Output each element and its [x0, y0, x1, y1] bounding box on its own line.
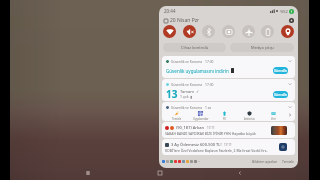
button[interactable]: Pil — [213, 110, 236, 121]
staticText: Veri — [271, 117, 276, 121]
button[interactable]: Back — [234, 167, 246, 179]
staticText: Uygulamalar — [193, 117, 209, 121]
staticText: 20:44 — [164, 8, 176, 14]
staticText: Güvenlik ve Koruma — [171, 82, 203, 86]
button[interactable]: Settings — [289, 18, 294, 23]
staticText: Güncelle — [274, 69, 288, 73]
button[interactable]: App — [166, 160, 169, 163]
staticText: Güvenlik ve Koruma — [171, 105, 203, 109]
button[interactable]: Medya çıkışı — [230, 43, 294, 52]
staticText: ··· — [198, 160, 201, 164]
button[interactable]: Battery — [261, 25, 274, 38]
staticText: SABAH BANDI SAYDIRAK BİZE İYİNİR YHN Hay… — [165, 131, 256, 136]
button[interactable]: Screen — [222, 25, 235, 38]
button[interactable]: App — [182, 160, 185, 163]
button[interactable]: App — [194, 160, 197, 163]
button[interactable]: App — [178, 160, 181, 163]
staticText: 17:30 — [205, 59, 214, 63]
button[interactable]: More — [286, 110, 293, 120]
staticText: (90_187) Arkan — [176, 125, 205, 130]
staticText: 13 — [166, 87, 178, 101]
button[interactable]: Güvenlik ve Koruma — [162, 56, 295, 78]
button[interactable]: App — [186, 160, 189, 163]
staticText: Güvenlik ve Koruma — [171, 59, 203, 63]
staticText: KOBİ'lere Özel Vodafone Başlasın Faizler… — [165, 148, 269, 153]
button[interactable]: 3 Ay Ödemesiz 600-500 TL! — [162, 139, 295, 155]
staticText: 1 sa — [205, 105, 212, 109]
button[interactable]: Güncelle — [273, 91, 288, 98]
staticText: 1 çok ▮ — [180, 94, 193, 99]
button[interactable]: Home — [82, 167, 94, 179]
staticText: 3 Ay Ödemesiz 600-500 TL! — [171, 142, 222, 147]
button[interactable]: Flight mode — [242, 25, 255, 38]
button[interactable]: Location — [281, 25, 294, 38]
staticText: Tamam ✓ — [180, 89, 200, 94]
button[interactable]: Bildirim ayarları — [252, 159, 278, 164]
button[interactable]: Güvenlik ve Koruma — [162, 102, 295, 121]
button[interactable]: Wi-Fi — [163, 25, 176, 38]
button[interactable]: Temizle — [165, 110, 188, 121]
staticText: 17:11 — [224, 143, 232, 147]
button[interactable]: Temizle — [282, 159, 294, 164]
staticText: 17:30 — [205, 82, 214, 86]
staticText: 17:11 — [207, 126, 215, 130]
button[interactable]: App — [190, 160, 193, 163]
staticText: Cihaz kontrolü — [181, 45, 209, 50]
staticText: Pil — [223, 117, 226, 121]
button[interactable]: App — [170, 160, 173, 163]
button[interactable]: Sound — [183, 25, 196, 38]
button[interactable]: Veri — [262, 110, 285, 121]
staticText: %52 — [280, 9, 288, 14]
button[interactable]: Güvenlik ve Koruma — [162, 79, 295, 101]
button[interactable]: Antivirüs — [238, 110, 261, 121]
button[interactable]: Cihaz kontrolü — [163, 43, 226, 52]
staticText: Temizle — [172, 117, 182, 121]
button[interactable]: App — [162, 160, 165, 163]
staticText: Güvenlik uygulamasını indirin — [166, 68, 229, 74]
staticText: Güncelle — [274, 93, 288, 97]
button[interactable]: (90_187) Arkan — [162, 122, 295, 138]
button[interactable]: Güncelle — [273, 67, 288, 74]
staticText: Antivirüs — [244, 117, 255, 121]
button[interactable]: Bluetooth — [202, 25, 215, 38]
staticText: 20 Nisan Pzr — [170, 17, 200, 24]
button[interactable]: App — [174, 160, 177, 163]
staticText: Medya çıkışı — [251, 45, 274, 50]
button[interactable]: Uygulamalar — [189, 110, 212, 121]
button[interactable]: Recents — [154, 167, 166, 179]
